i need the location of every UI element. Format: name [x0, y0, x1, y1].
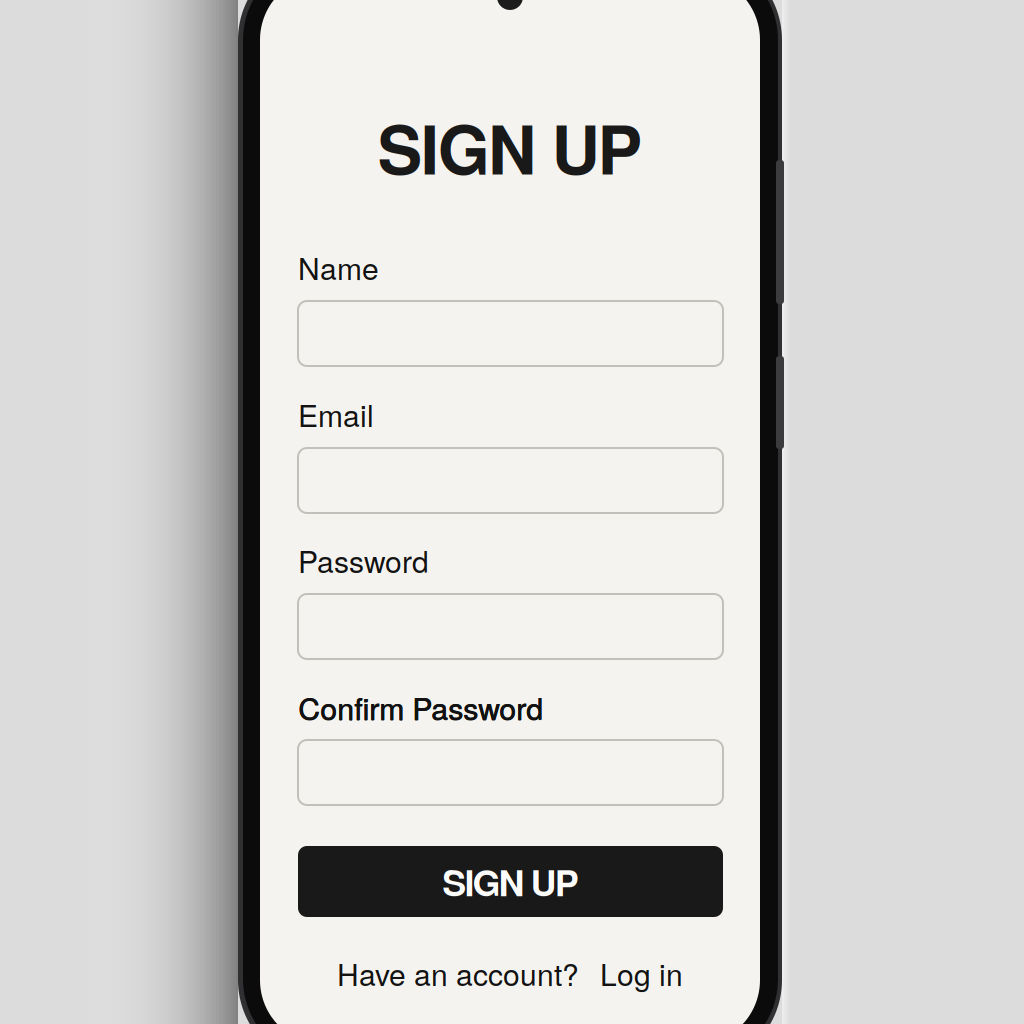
button[interactable]: Log in — [600, 951, 683, 994]
staticText: Log in — [600, 951, 683, 994]
staticText: Name — [298, 245, 379, 288]
button[interactable]: Password — [298, 594, 723, 659]
staticText: Email — [298, 392, 374, 435]
staticText: Confirm Password — [298, 685, 543, 728]
staticText: Password — [298, 538, 429, 581]
staticText: Confirm Password — [298, 686, 543, 729]
staticText: SIGN UP — [377, 99, 643, 195]
staticText: Have an account? — [337, 951, 579, 994]
button[interactable]: Name — [298, 301, 723, 366]
staticText: Confirm Password — [299, 685, 544, 728]
staticText: SIGN UP — [442, 856, 579, 907]
button[interactable]: Email — [298, 448, 723, 513]
button[interactable]: Confirm Password — [298, 740, 723, 805]
button[interactable]: SIGN UP — [298, 846, 723, 917]
